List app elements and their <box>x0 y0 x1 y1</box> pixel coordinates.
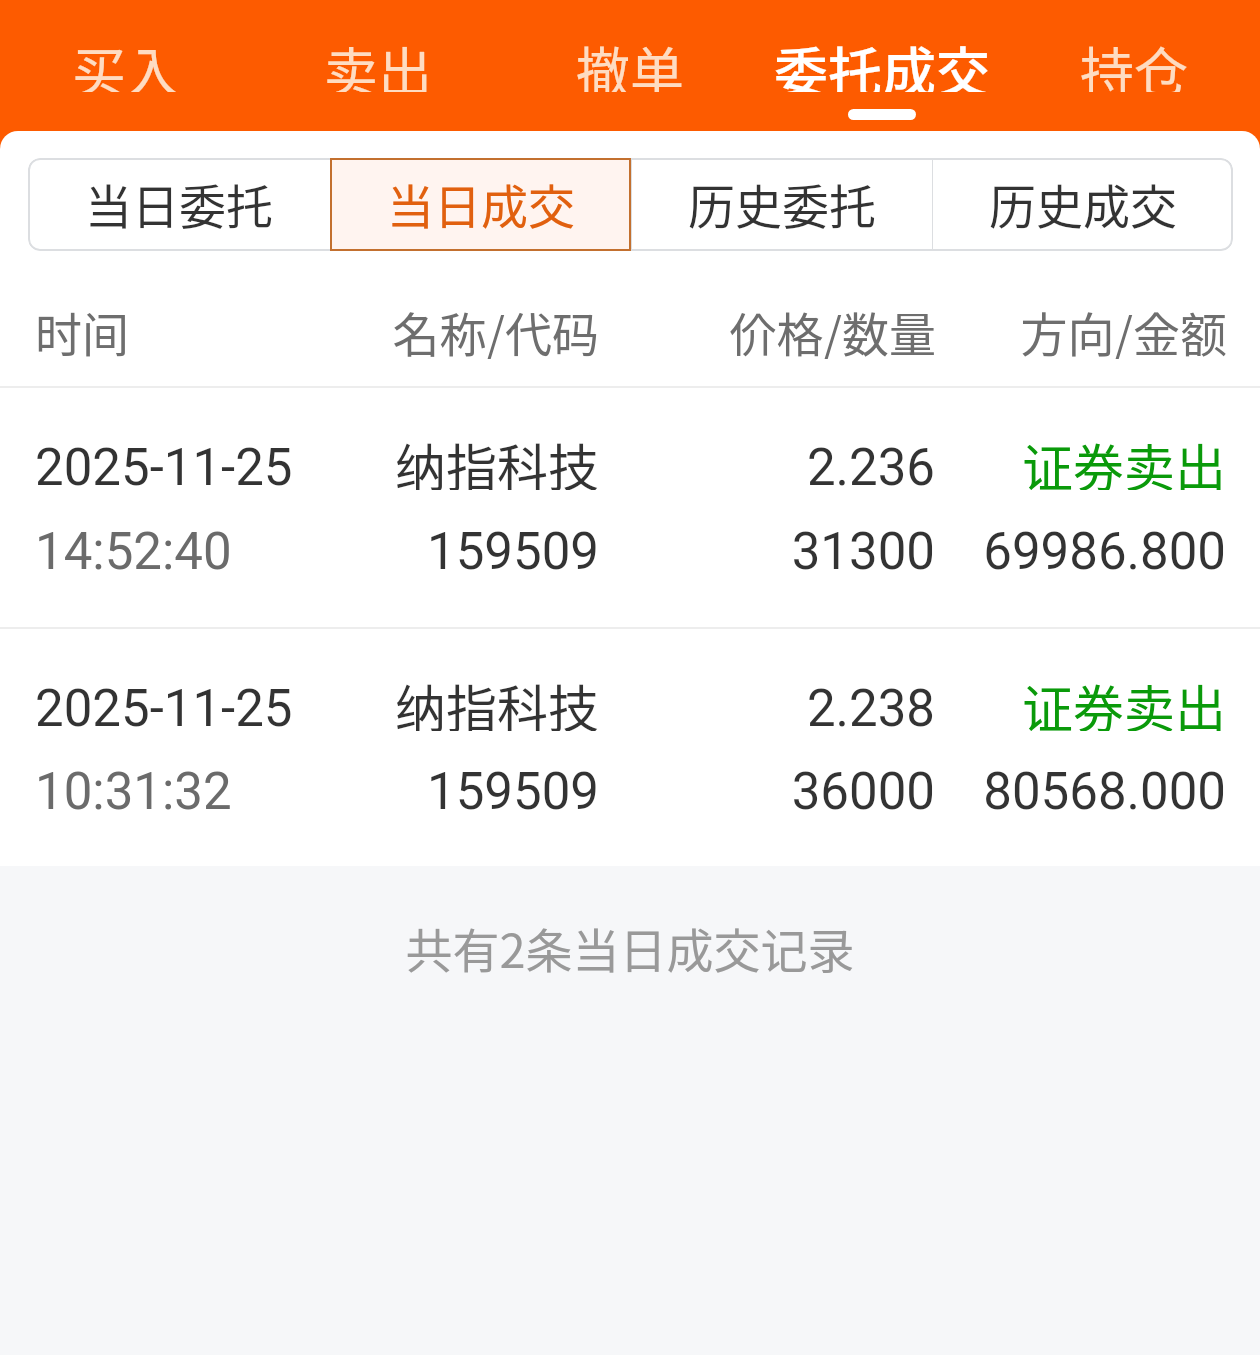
staticText: 撤单 <box>576 30 684 92</box>
staticText: 名称/代码 <box>392 297 599 359</box>
staticText: 委托成交 <box>774 30 990 92</box>
staticText: 159509 <box>427 762 599 822</box>
staticText: 持仓 <box>1080 30 1188 92</box>
button[interactable]: 委托成交 <box>756 0 1008 131</box>
staticText: 证券卖出 <box>1021 669 1226 731</box>
staticText: 69986.800 <box>983 522 1226 582</box>
staticText: 买入 <box>72 30 180 92</box>
button[interactable]: 卖出 <box>252 0 504 131</box>
staticText: 80568.000 <box>983 762 1226 822</box>
staticText: 证券卖出 <box>1021 428 1226 490</box>
staticText: 14:52:40 <box>35 522 232 582</box>
staticText: 卖出 <box>324 30 432 92</box>
staticText: 历史成交 <box>989 169 1177 237</box>
staticText: 共有2条当日成交记录 <box>0 913 1260 981</box>
staticText: 2.236 <box>806 438 935 498</box>
button[interactable]: 撤单 <box>504 0 756 131</box>
staticText: 历史委托 <box>688 169 876 237</box>
button[interactable]: 当日委托 <box>28 158 330 251</box>
button[interactable]: 历史委托 <box>631 158 932 251</box>
staticText: 当日委托 <box>85 169 273 237</box>
staticText: 当日成交 <box>387 169 575 237</box>
staticText: 方向/金额 <box>1020 297 1227 359</box>
button[interactable]: 2025-11-25 <box>0 629 1260 866</box>
button[interactable]: 历史成交 <box>932 158 1233 251</box>
button[interactable]: 当日成交 <box>330 158 631 251</box>
staticText: 价格/数量 <box>729 297 936 359</box>
staticText: 时间 <box>35 297 129 359</box>
button[interactable]: 持仓 <box>1008 0 1260 131</box>
staticText: 2025-11-25 <box>35 438 293 498</box>
staticText: 2025-11-25 <box>35 679 293 739</box>
button[interactable]: 2025-11-25 <box>0 388 1260 627</box>
staticText: 2.238 <box>806 679 935 739</box>
staticText: 纳指科技 <box>394 669 599 731</box>
staticText: 31300 <box>791 522 935 582</box>
button[interactable]: 买入 <box>0 0 252 131</box>
staticText: 纳指科技 <box>394 428 599 490</box>
staticText: 36000 <box>791 762 935 822</box>
staticText: 159509 <box>427 522 599 582</box>
staticText: 10:31:32 <box>35 762 232 822</box>
